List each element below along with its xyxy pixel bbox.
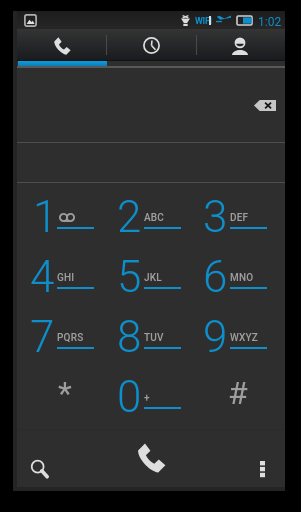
- staticText: *: [58, 374, 72, 412]
- button[interactable]: Call history tab: [107, 29, 196, 60]
- button[interactable]: Contacts tab: [196, 29, 284, 60]
- staticText: #: [228, 374, 248, 412]
- button[interactable]: 6: [190, 242, 277, 302]
- staticText: 7: [30, 311, 55, 363]
- staticText: JKL: [144, 272, 162, 284]
- staticText: 8: [117, 311, 142, 363]
- staticText: 3: [203, 191, 228, 243]
- staticText: 2: [117, 191, 142, 243]
- staticText: ABC: [144, 212, 165, 224]
- button[interactable]: 7: [17, 302, 104, 362]
- button[interactable]: Search: [17, 429, 106, 488]
- button[interactable]: 0: [104, 362, 191, 422]
- button[interactable]: 5: [104, 242, 191, 302]
- staticText: MNO: [230, 272, 254, 284]
- button[interactable]: #: [190, 362, 277, 422]
- button[interactable]: Screenshot notification: [24, 14, 37, 27]
- staticText: PQRS: [57, 332, 84, 344]
- button[interactable]: 4: [17, 242, 104, 302]
- button[interactable]: Keypad tab: [17, 29, 107, 60]
- staticText: 5: [117, 251, 142, 303]
- staticText: TUV: [144, 332, 164, 344]
- staticText: DEF: [230, 212, 249, 224]
- button[interactable]: More options: [195, 429, 285, 488]
- staticText: WXYZ: [230, 332, 259, 344]
- staticText: GHI: [57, 272, 75, 284]
- staticText: 9: [203, 311, 228, 363]
- staticText: 4: [30, 251, 55, 303]
- staticText: 1:02: [258, 15, 282, 29]
- button[interactable]: Backspace: [254, 100, 276, 111]
- staticText: 6: [203, 251, 228, 303]
- button[interactable]: 9: [190, 302, 277, 362]
- button[interactable]: 1: [17, 182, 104, 242]
- button[interactable]: *: [17, 362, 104, 422]
- button[interactable]: 2: [104, 182, 191, 242]
- staticText: WIFI: [195, 16, 212, 27]
- staticText: 1: [33, 191, 58, 243]
- button[interactable]: 3: [190, 182, 277, 242]
- staticText: +: [144, 392, 150, 404]
- button[interactable]: Call: [106, 429, 195, 488]
- button[interactable]: 8: [104, 302, 191, 362]
- staticText: 0: [117, 371, 142, 423]
